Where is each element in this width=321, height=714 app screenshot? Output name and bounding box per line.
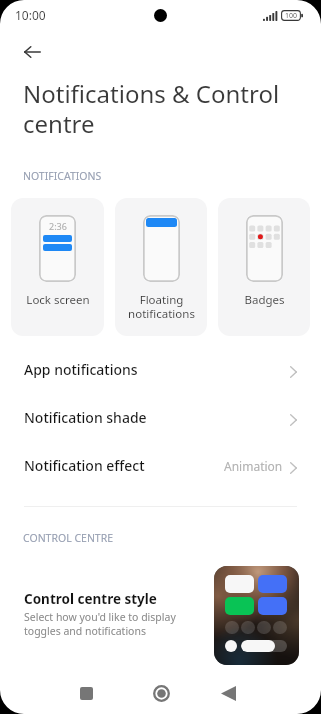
staticText: Select how you'd like to display toggles… <box>24 610 189 638</box>
staticText: App notifications <box>24 360 138 379</box>
staticText: Notification effect <box>24 456 145 475</box>
button[interactable]: Recent apps <box>64 672 108 714</box>
staticText: 100 <box>285 11 298 21</box>
button[interactable]: 2:36 <box>11 198 104 336</box>
button[interactable]: Control centre style <box>0 560 321 670</box>
button[interactable]: Back <box>10 30 54 74</box>
staticText: Animation <box>224 458 283 474</box>
staticText: Badges <box>244 292 285 308</box>
button[interactable]: Notification shade <box>0 393 321 441</box>
button[interactable]: Badges <box>218 198 310 336</box>
button[interactable]: Back <box>206 672 250 714</box>
staticText: 10:00 <box>15 7 46 23</box>
staticText: 2:36 <box>49 220 67 232</box>
staticText: Notifications & Control centre <box>23 77 291 140</box>
button[interactable]: Home <box>139 672 183 714</box>
staticText: Floating notifications <box>128 292 195 321</box>
button[interactable]: Floating notifications <box>115 198 207 336</box>
staticText: Lock screen <box>26 292 90 308</box>
staticText: CONTROL CENTRE <box>23 531 114 545</box>
staticText: NOTIFICATIONS <box>23 169 102 183</box>
button[interactable]: App notifications <box>0 345 321 393</box>
staticText: Control centre style <box>24 590 157 608</box>
staticText: Notification shade <box>24 408 147 427</box>
button[interactable]: Notification effect <box>0 441 321 489</box>
